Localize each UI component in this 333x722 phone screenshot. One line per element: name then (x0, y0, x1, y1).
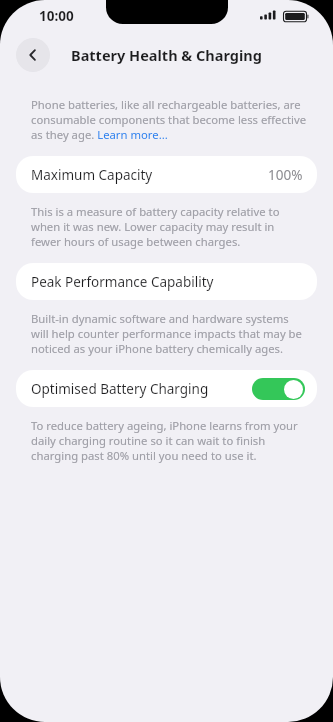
button[interactable]: Peak Performance Capability (16, 263, 317, 300)
staticText: 100% (268, 166, 303, 184)
staticText: Phone batteries, like all rechargeable b… (31, 97, 307, 142)
button[interactable]: Optimised Battery Charging toggle (252, 378, 305, 400)
staticText: To reduce battery ageing, iPhone learns … (31, 418, 307, 463)
button[interactable]: Optimised Battery Charging (16, 370, 317, 407)
button[interactable]: Back (16, 38, 50, 72)
staticText: Battery Health & Charging (71, 45, 262, 65)
staticText: Maximum Capacity (31, 166, 153, 184)
button[interactable]: Maximum Capacity (16, 156, 317, 193)
staticText: Built-in dynamic software and hardware s… (31, 311, 307, 356)
staticText: This is a measure of battery capacity re… (31, 204, 307, 249)
staticText: Peak Performance Capability (31, 273, 214, 291)
staticText: Optimised Battery Charging (31, 380, 209, 398)
staticText: 10:00 (39, 7, 74, 25)
